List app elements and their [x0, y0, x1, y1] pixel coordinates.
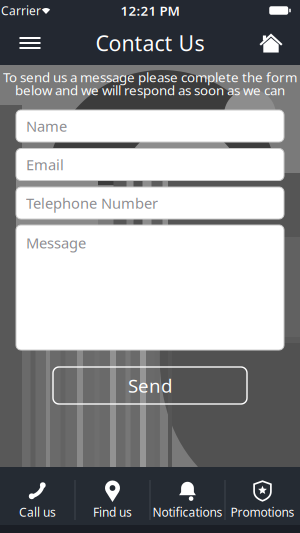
staticText: Carrier: [1, 2, 41, 18]
staticText: Find us: [93, 504, 132, 520]
staticText: Email: [26, 155, 64, 174]
button[interactable]: Send: [53, 367, 247, 404]
staticText: below and we will respond as soon as we …: [15, 81, 285, 99]
button[interactable]: Email: [16, 148, 284, 180]
button[interactable]: Telephone Number: [16, 187, 284, 219]
staticText: Message: [26, 233, 86, 252]
button[interactable]: Notifications: [150, 467, 225, 533]
staticText: To send us a message please complete the…: [3, 68, 297, 86]
staticText: Send: [128, 373, 172, 398]
staticText: Notifications: [152, 504, 222, 520]
button[interactable]: [259, 33, 282, 52]
staticText: Contact Us: [95, 29, 204, 57]
button[interactable]: Name: [16, 110, 284, 142]
staticText: Name: [26, 116, 67, 136]
button[interactable]: Call us: [0, 467, 75, 533]
button[interactable]: Message: [16, 225, 284, 350]
button[interactable]: [8, 21, 52, 65]
staticText: Telephone Number: [26, 193, 158, 213]
staticText: Call us: [19, 504, 56, 520]
button[interactable]: Find us: [75, 467, 150, 533]
button[interactable]: Promotions: [225, 467, 300, 533]
staticText: Promotions: [230, 504, 294, 520]
staticText: 12:21 PM: [120, 2, 179, 19]
